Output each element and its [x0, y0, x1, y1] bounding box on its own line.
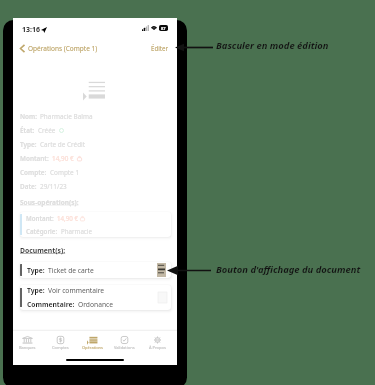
staticText: Validations — [114, 345, 135, 350]
staticText: Pharmacie Balma — [40, 112, 93, 121]
staticText: 87 — [161, 26, 166, 31]
staticText: Ticket de carte — [48, 266, 94, 275]
staticText: Comptes — [52, 345, 69, 350]
staticText: Compte: — [20, 168, 47, 177]
staticText: Sous-opération(s): — [20, 198, 79, 207]
staticText: Opérations (Compte 1) — [28, 44, 98, 53]
button[interactable]: Éditer — [147, 42, 173, 54]
staticText: Éditer — [151, 44, 169, 52]
staticText: Basculer en mode édition — [216, 39, 329, 52]
staticText: État: — [20, 126, 35, 135]
staticText: Ordonance — [78, 300, 114, 309]
staticText: À Propos — [149, 345, 166, 350]
button[interactable]: Type: — [20, 285, 171, 310]
staticText: Commentaire: — [27, 300, 75, 309]
staticText: Type: — [27, 286, 45, 295]
staticText: 13:16 — [22, 25, 40, 35]
staticText: Pharmacie — [61, 227, 92, 235]
staticText: Bouton d'affichage du document — [216, 263, 361, 276]
button[interactable]: Afficher le document — [157, 263, 166, 277]
staticText: 14,90 € — [52, 154, 74, 163]
button[interactable]: Opérations (Compte 1) — [16, 42, 102, 55]
staticText: Montant: — [26, 214, 54, 222]
staticText: Banques — [19, 345, 36, 350]
button[interactable]: Comptes — [45, 336, 75, 350]
button[interactable]: Opérations — [77, 336, 107, 350]
button[interactable]: Banques — [12, 336, 42, 350]
staticText: Type: — [20, 140, 37, 149]
staticText: Nom: — [20, 112, 37, 121]
button[interactable]: Type: — [20, 262, 171, 278]
staticText: Montant: — [20, 154, 49, 163]
staticText: Créée — [38, 126, 56, 135]
staticText: Opérations — [82, 345, 103, 350]
staticText: 29/11/23 — [40, 182, 67, 191]
button[interactable]: Montant: — [20, 212, 171, 237]
button[interactable]: Validations — [109, 336, 139, 350]
button[interactable]: À Propos — [142, 336, 172, 350]
staticText: Document(s): — [20, 246, 66, 255]
staticText: Type: — [27, 266, 45, 275]
staticText: Carte de Crédit — [40, 140, 86, 149]
staticText: Catégorie: — [26, 227, 58, 235]
staticText: Compte 1 — [50, 168, 80, 177]
staticText: Voir commentaire — [48, 286, 105, 295]
staticText: 14,90 € — [57, 214, 78, 222]
staticText: Date: — [20, 182, 37, 191]
